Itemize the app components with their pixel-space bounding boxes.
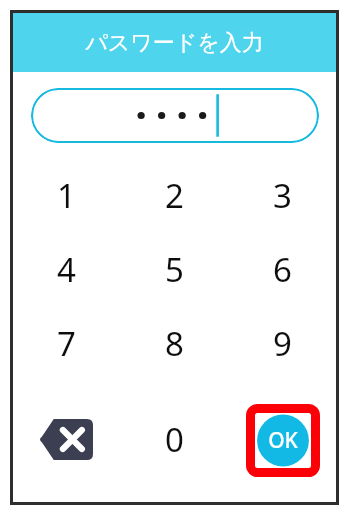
button[interactable]: OK [246, 404, 320, 477]
staticText: 6 [273, 247, 292, 292]
button[interactable]: 6 [228, 232, 336, 306]
button[interactable]: 0 [120, 380, 228, 498]
button[interactable] [31, 88, 319, 143]
button[interactable]: 9 [228, 306, 336, 380]
staticText: 5 [165, 247, 184, 292]
button[interactable]: 1 [13, 158, 120, 232]
staticText: 9 [273, 321, 292, 366]
button[interactable]: 7 [13, 306, 120, 380]
button[interactable]: 5 [120, 232, 228, 306]
staticText: OK [268, 426, 298, 455]
staticText: 1 [57, 173, 76, 218]
staticText: 8 [165, 321, 184, 366]
staticText: 7 [57, 321, 76, 366]
button[interactable]: 3 [228, 158, 336, 232]
button[interactable]: 8 [120, 306, 228, 380]
staticText: 3 [273, 173, 292, 218]
staticText: 2 [165, 173, 184, 218]
staticText: 0 [165, 417, 184, 462]
staticText: パスワードを入力 [85, 29, 264, 57]
button[interactable]: 2 [120, 158, 228, 232]
staticText: 4 [57, 247, 76, 292]
button[interactable]: 4 [13, 232, 120, 306]
button[interactable]: Backspace [13, 380, 120, 498]
